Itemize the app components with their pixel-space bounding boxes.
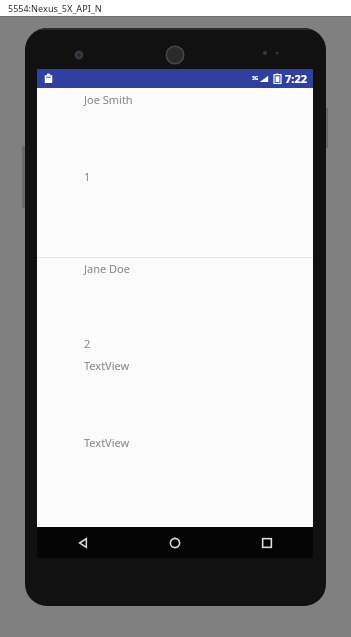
staticText: 1 [84,169,91,184]
staticText: Jane Doe [84,261,130,276]
button[interactable]: Jane Doe [37,258,313,435]
staticText: 7:22 [285,71,307,86]
button[interactable]: Back [37,527,129,558]
staticText: TextView [84,358,130,373]
button[interactable]: Recent apps [221,527,313,558]
button[interactable]: TextView [84,435,130,450]
staticText: 2 [84,336,91,351]
button[interactable]: Joe Smith [37,88,313,257]
staticText: Joe Smith [84,92,133,107]
staticText: 3G [252,75,259,82]
staticText: 5554:Nexus_5X_API_N [8,2,102,14]
button[interactable]: Home [129,527,221,558]
